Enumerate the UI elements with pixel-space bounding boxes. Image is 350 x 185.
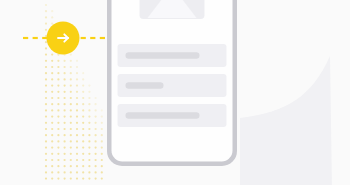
button[interactable]: Next — [46, 21, 80, 55]
